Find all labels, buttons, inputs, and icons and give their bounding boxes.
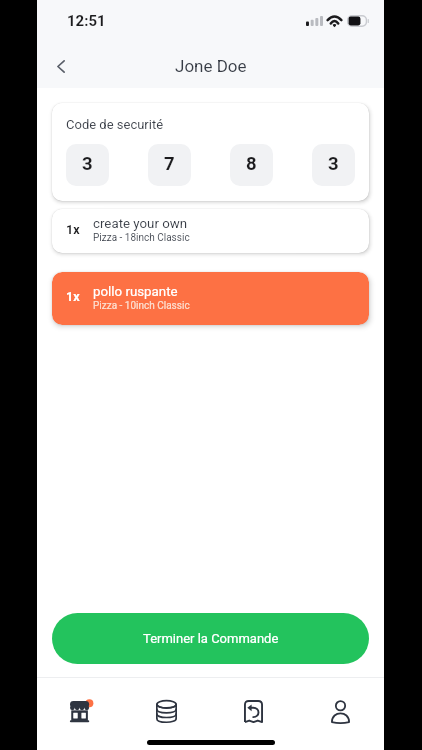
staticText: Code de securité [66,117,164,132]
staticText: 12:51 [67,12,106,30]
button[interactable]: Terminer la Commande [52,613,369,664]
staticText: 8 [246,153,257,175]
button[interactable]: 3 [66,144,109,186]
button[interactable]: 1x [52,272,369,325]
staticText: 3 [328,153,339,175]
staticText: 7 [164,153,175,175]
staticText: 1x [66,222,80,237]
staticText: Jone Doe [175,56,247,76]
staticText: Terminer la Commande [143,631,279,646]
button[interactable]: 7 [148,144,191,186]
button[interactable]: Coins [123,689,210,734]
button[interactable]: Back [40,46,80,86]
staticText: Pizza - 10inch Classic [93,300,190,312]
button[interactable]: Shop [37,689,123,734]
staticText: 1x [66,289,80,304]
staticText: 3 [82,153,93,175]
button[interactable]: 8 [230,144,273,186]
button[interactable]: Refunds [210,689,297,734]
button[interactable]: 3 [312,144,355,186]
staticText: Pizza - 18inch Classic [93,232,190,244]
staticText: create your own [93,216,188,232]
button[interactable]: Profile [297,689,384,734]
staticText: pollo ruspante [93,284,178,300]
button[interactable]: 1x [52,209,369,253]
